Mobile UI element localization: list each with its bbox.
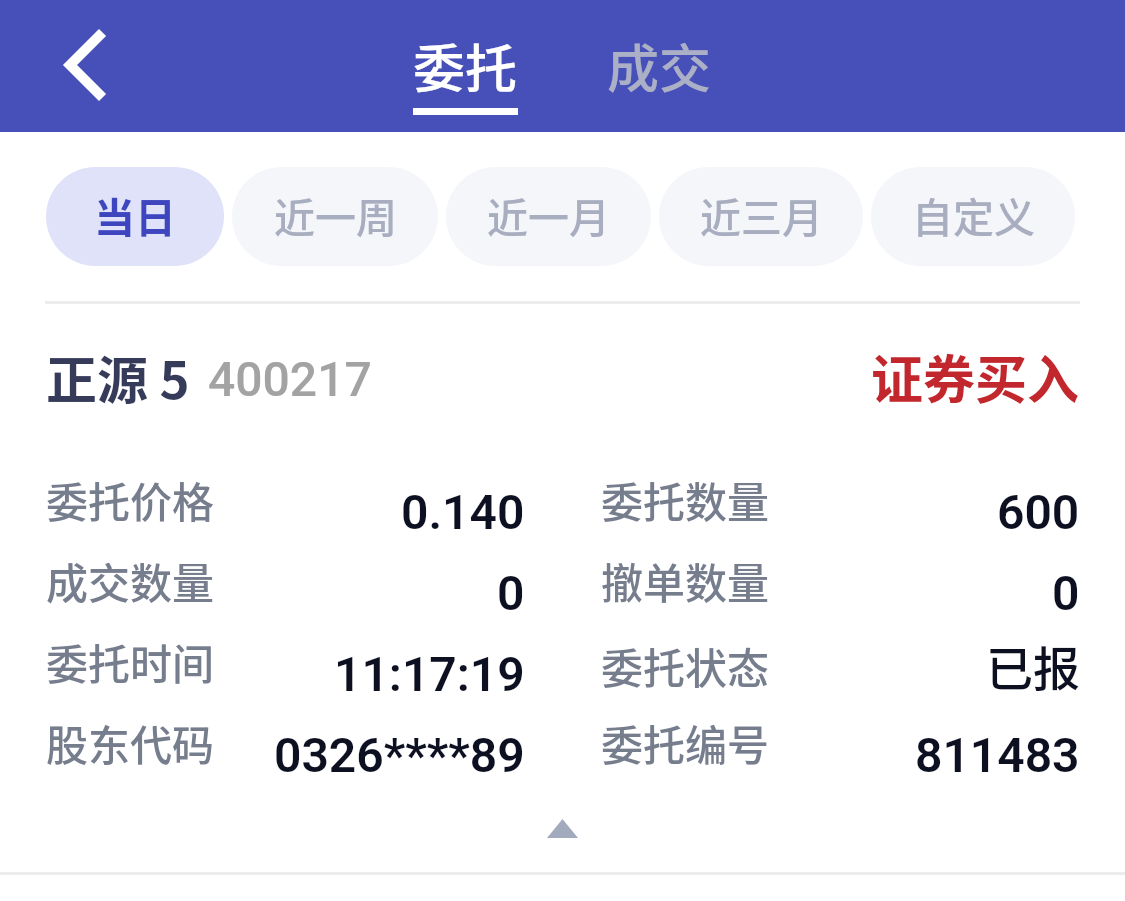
- staticText: 委托价格: [46, 469, 215, 530]
- staticText: 自定义: [912, 185, 1035, 244]
- button[interactable]: 委托价格: [0, 469, 1125, 793]
- staticText: 委托状态: [601, 635, 770, 696]
- staticText: 证券买入: [871, 339, 1080, 414]
- staticText: 近一月: [487, 185, 610, 244]
- staticText: 400217: [208, 351, 372, 407]
- staticText: 0326****89: [274, 727, 525, 783]
- staticText: 近三月: [700, 185, 823, 244]
- staticText: 委托: [413, 28, 518, 103]
- button[interactable]: Collapse: [512, 799, 612, 857]
- button[interactable]: 成交: [597, 24, 722, 119]
- button[interactable]: 近三月: [659, 167, 863, 266]
- staticText: 近一周: [274, 185, 397, 244]
- button[interactable]: 委托: [403, 24, 528, 119]
- button[interactable]: 自定义: [871, 167, 1075, 266]
- staticText: 11:17:19: [334, 646, 525, 702]
- staticText: 当日: [94, 185, 176, 244]
- button[interactable]: 当日: [46, 167, 224, 266]
- staticText: 811483: [915, 727, 1080, 783]
- staticText: 股东代码: [46, 712, 215, 773]
- button[interactable]: 近一周: [232, 167, 438, 266]
- staticText: 委托时间: [46, 631, 215, 692]
- staticText: 0.140: [401, 484, 525, 540]
- button[interactable]: 近一月: [446, 167, 651, 266]
- staticText: 0: [497, 565, 525, 621]
- staticText: 600: [997, 484, 1080, 540]
- staticText: 0: [1052, 565, 1080, 621]
- staticText: 正源 5: [46, 340, 190, 414]
- staticText: 已报: [986, 631, 1080, 699]
- button[interactable]: Back: [20, 18, 116, 114]
- staticText: 委托编号: [601, 712, 770, 773]
- staticText: 成交: [607, 28, 712, 103]
- staticText: 成交数量: [46, 550, 215, 611]
- staticText: 撤单数量: [601, 550, 770, 611]
- staticText: 委托数量: [601, 469, 770, 530]
